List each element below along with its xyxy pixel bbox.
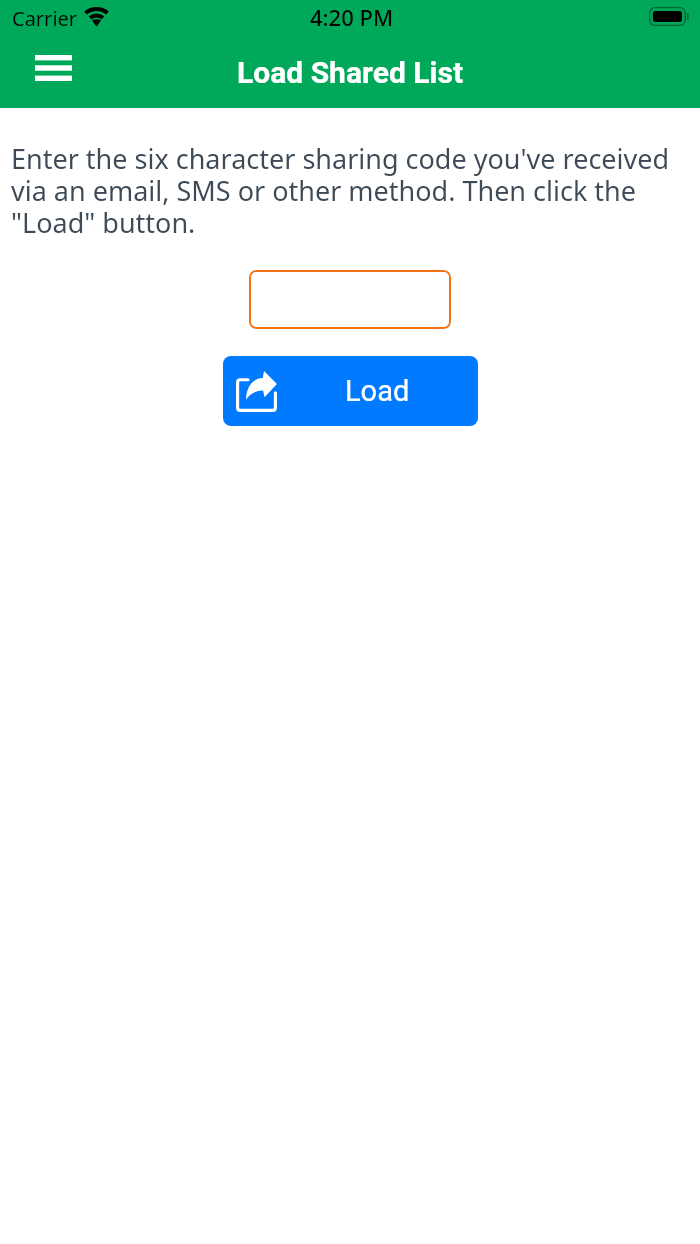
button[interactable]: Sharing code — [249, 270, 451, 329]
button[interactable]: Load — [223, 356, 478, 426]
button[interactable]: Menu — [18, 41, 89, 101]
staticText: Load Shared List — [237, 55, 464, 90]
staticText: 4:20 PM — [310, 2, 394, 32]
staticText: Enter the six character sharing code you… — [11, 140, 678, 241]
staticText: Load — [345, 374, 410, 408]
staticText: Carrier — [12, 5, 78, 32]
